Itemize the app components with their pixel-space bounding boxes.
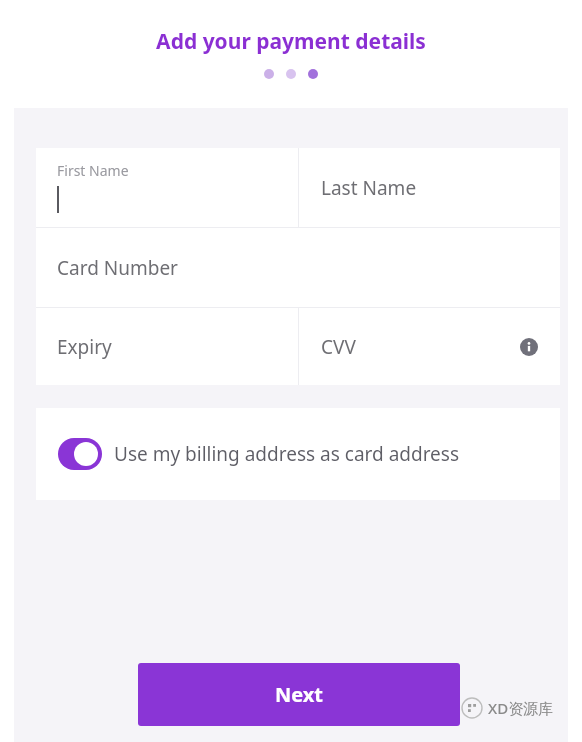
other: Use billing address toggle bbox=[58, 438, 102, 470]
staticText: XD资源库 bbox=[488, 698, 554, 718]
staticText: Last Name bbox=[321, 175, 417, 201]
staticText: Use my billing address as card address bbox=[114, 441, 464, 467]
button[interactable]: Use billing address toggle bbox=[36, 408, 560, 500]
button[interactable]: CVV bbox=[299, 308, 560, 385]
staticText: Expiry bbox=[57, 334, 112, 360]
button[interactable]: Expiry bbox=[36, 308, 298, 385]
staticText: Add your payment details bbox=[156, 27, 426, 56]
button[interactable]: First Name bbox=[36, 148, 298, 227]
button[interactable]: Last Name bbox=[299, 148, 560, 227]
button[interactable]: Next bbox=[138, 663, 460, 726]
staticText: Next bbox=[275, 681, 324, 708]
staticText: Card Number bbox=[57, 255, 178, 281]
staticText: First Name bbox=[57, 161, 129, 180]
staticText: CVV bbox=[321, 334, 356, 360]
button[interactable]: CVV information bbox=[520, 338, 538, 356]
button[interactable]: Card Number bbox=[36, 228, 560, 307]
